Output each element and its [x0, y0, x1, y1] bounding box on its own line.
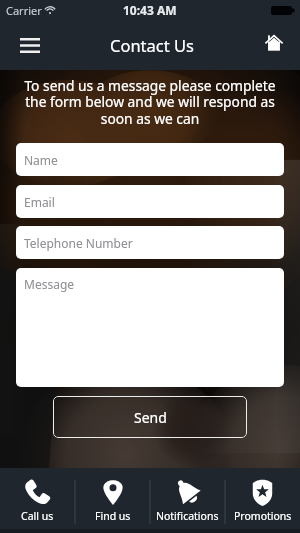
staticText: 10:43 AM — [123, 2, 177, 18]
staticText: Find us — [95, 509, 131, 523]
staticText: Notifications — [156, 509, 219, 523]
button[interactable]: Menu — [0, 20, 60, 70]
button[interactable]: Promotions — [225, 468, 300, 533]
button[interactable]: Email — [16, 185, 284, 218]
staticText: Telephone Number — [24, 235, 133, 251]
staticText: To send us a message please complete the… — [16, 76, 284, 128]
button[interactable]: Home — [254, 20, 300, 70]
staticText: Carrier — [6, 3, 42, 18]
button[interactable]: Notifications — [150, 468, 225, 533]
staticText: Email — [24, 194, 55, 210]
staticText: Send — [134, 408, 167, 427]
staticText: Call us — [21, 509, 54, 523]
button[interactable]: Send — [53, 396, 247, 438]
staticText: Promotions — [234, 509, 292, 523]
button[interactable]: Telephone Number — [16, 226, 284, 259]
staticText: Contact Us — [110, 34, 194, 56]
button[interactable]: Message — [16, 268, 284, 387]
button[interactable]: Call us — [0, 468, 75, 533]
button[interactable]: Find us — [75, 468, 150, 533]
staticText: Message — [24, 276, 75, 292]
button[interactable]: Name — [16, 143, 284, 176]
staticText: Name — [24, 152, 58, 168]
